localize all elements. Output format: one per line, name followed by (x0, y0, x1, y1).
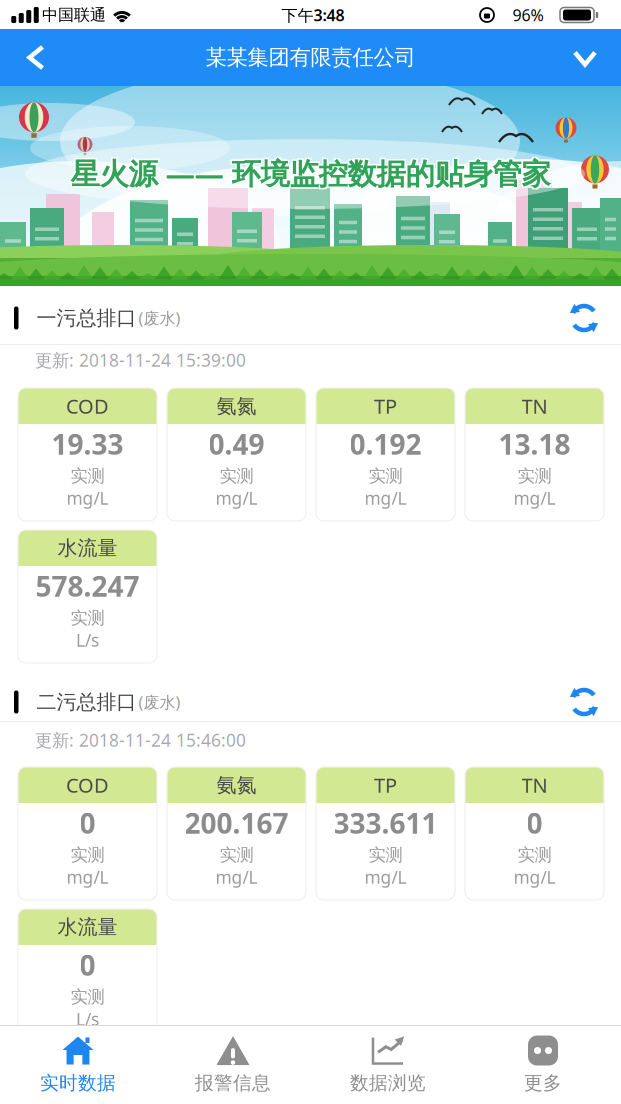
staticText: 星火源 —— 环境监控数据的贴身管家 (69, 152, 549, 191)
staticText: (废水) (138, 307, 180, 329)
staticText: 星火源 —— 环境监控数据的贴身管家 (69, 155, 549, 194)
staticText: 0 (526, 804, 542, 842)
staticText: 实测 (517, 844, 551, 866)
staticText: 实测 (70, 986, 104, 1008)
staticText: TP (374, 393, 397, 419)
staticText: mg/L (215, 486, 257, 509)
button[interactable]: 报警信息 (155, 1027, 310, 1103)
staticText: 一污总排口 (36, 306, 136, 330)
staticText: 水流量 (57, 536, 117, 560)
staticText: 实测 (368, 465, 402, 487)
staticText: 实测 (517, 465, 551, 487)
staticText: mg/L (215, 865, 257, 888)
staticText: TP (374, 772, 397, 798)
staticText: 更新: 2018-11-24 15:46:00 (35, 728, 246, 751)
staticText: 星火源 —— 环境监控数据的贴身管家 (72, 152, 552, 191)
button[interactable]: 实时数据 (0, 1027, 155, 1103)
staticText: 实测 (70, 465, 104, 487)
staticText: 578.247 (35, 567, 139, 605)
button[interactable]: 数据浏览 (310, 1027, 465, 1103)
button[interactable]: 更多 (465, 1027, 620, 1103)
button[interactable]: 展开 (563, 40, 607, 76)
staticText: 实测 (219, 844, 253, 866)
staticText: 数据浏览 (350, 1071, 426, 1094)
staticText: 二污总排口 (36, 690, 136, 714)
staticText: 实测 (368, 844, 402, 866)
staticText: TN (521, 393, 547, 419)
button[interactable]: 刷新 (563, 681, 605, 723)
staticText: 200.167 (184, 804, 288, 842)
staticText: 下午3:48 (281, 4, 344, 26)
staticText: L/s (76, 628, 99, 651)
staticText: 某某集团有限责任公司 (205, 44, 415, 71)
staticText: COD (66, 772, 109, 798)
staticText: L/s (76, 1007, 99, 1030)
staticText: mg/L (364, 865, 406, 888)
button[interactable]: 刷新 (563, 297, 605, 339)
staticText: 更新: 2018-11-24 15:39:00 (35, 348, 246, 371)
staticText: mg/L (513, 486, 555, 509)
staticText: 实测 (219, 465, 253, 487)
staticText: 333.611 (333, 804, 437, 842)
staticText: 实测 (70, 844, 104, 866)
staticText: 实时数据 (40, 1071, 116, 1094)
staticText: 星火源 —— 环境监控数据的贴身管家 (72, 155, 552, 194)
staticText: mg/L (513, 865, 555, 888)
staticText: COD (66, 393, 109, 419)
staticText: 星火源 —— 环境监控数据的贴身管家 (70, 153, 550, 192)
staticText: 水流量 (57, 915, 117, 939)
staticText: 更多 (524, 1071, 562, 1094)
staticText: mg/L (66, 865, 108, 888)
staticText: TN (521, 772, 547, 798)
staticText: 0 (79, 946, 95, 984)
staticText: 报警信息 (195, 1071, 271, 1094)
staticText: 96% (512, 4, 543, 26)
staticText: mg/L (364, 486, 406, 509)
staticText: 氨氮 (216, 773, 256, 797)
staticText: 0 (79, 804, 95, 842)
staticText: (废水) (138, 691, 180, 713)
staticText: 0.49 (208, 425, 264, 463)
staticText: 氨氮 (216, 394, 256, 418)
staticText: 13.18 (498, 425, 570, 463)
staticText: mg/L (66, 486, 108, 509)
staticText: 中国联通 (42, 5, 106, 25)
staticText: 实测 (70, 607, 104, 629)
staticText: 0.192 (349, 425, 421, 463)
staticText: 19.33 (51, 425, 123, 463)
button[interactable]: 返回 (17, 35, 54, 80)
